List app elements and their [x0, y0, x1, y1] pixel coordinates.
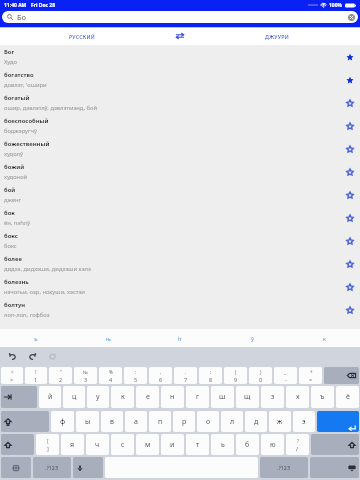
button[interactable]: Бо	[2, 11, 358, 23]
button[interactable]: ДЖУУРИ	[195, 27, 360, 45]
button[interactable]: №	[74, 367, 97, 384]
button[interactable]: globe	[1, 457, 31, 478]
button[interactable]: ф	[51, 411, 74, 432]
button[interactable]: ,	[149, 367, 172, 384]
button[interactable]: dismiss	[310, 457, 359, 478]
button[interactable]: Add to favourites	[343, 165, 357, 179]
button[interactable]: болезнь	[0, 275, 360, 298]
button[interactable]: ь	[211, 434, 234, 455]
button[interactable]: shift	[1, 434, 34, 455]
button[interactable]: Clear search	[348, 14, 355, 21]
button[interactable]: бой	[0, 183, 360, 206]
button[interactable]: backspace	[324, 367, 359, 384]
button[interactable]: и	[161, 434, 184, 455]
button[interactable]: ?	[286, 434, 309, 455]
button[interactable]: я	[61, 434, 84, 455]
button[interactable]: щ	[236, 386, 259, 408]
button[interactable]: caps	[1, 411, 49, 432]
button[interactable]: Add to favourites	[343, 73, 357, 87]
button[interactable]: более	[0, 252, 360, 275]
button[interactable]: боеспособный	[0, 114, 360, 137]
button[interactable]: а	[125, 411, 147, 432]
button[interactable]: д	[245, 411, 267, 432]
button[interactable]: һ	[144, 329, 216, 347]
button[interactable]: ъ	[311, 386, 334, 408]
button[interactable]: :	[124, 367, 147, 384]
button[interactable]: Swap languages	[165, 27, 195, 45]
button[interactable]: mic	[73, 457, 103, 478]
button[interactable]: .?123	[260, 457, 308, 478]
button[interactable]: н	[161, 386, 184, 408]
button[interactable]: ;	[199, 367, 222, 384]
button[interactable]: Add to favourites	[343, 211, 357, 225]
button[interactable]: э	[293, 411, 315, 432]
button[interactable]: у	[87, 386, 109, 408]
button[interactable]: ш	[211, 386, 234, 408]
button[interactable]: божий	[0, 160, 360, 183]
button[interactable]: богатый	[0, 91, 360, 114]
button[interactable]: м	[136, 434, 159, 455]
button[interactable]: в	[101, 411, 123, 432]
button[interactable]: shift	[311, 434, 359, 455]
button[interactable]: з	[261, 386, 284, 408]
button[interactable]: Add to favourites	[343, 303, 357, 317]
button[interactable]: )	[249, 367, 272, 384]
button[interactable]: ё	[336, 386, 359, 408]
button[interactable]: б	[236, 434, 259, 455]
button[interactable]: "	[49, 367, 72, 384]
button[interactable]: р	[173, 411, 195, 432]
button[interactable]: enter	[317, 411, 359, 432]
button[interactable]: ц	[63, 386, 85, 408]
button[interactable]: богатство	[0, 68, 360, 91]
button[interactable]: <	[1, 367, 23, 384]
button[interactable]: Add to favourites	[343, 280, 357, 294]
button[interactable]: Add to favourites	[343, 50, 357, 64]
button[interactable]: ы	[76, 411, 99, 432]
button[interactable]: бокс	[0, 229, 360, 252]
button[interactable]: Add to favourites	[343, 119, 357, 133]
button[interactable]: ъ	[0, 329, 72, 347]
button[interactable]: болтун	[0, 298, 360, 321]
button[interactable]: е	[136, 386, 159, 408]
button[interactable]: к	[111, 386, 134, 408]
button[interactable]: божественный	[0, 137, 360, 160]
button[interactable]: т	[186, 434, 209, 455]
button[interactable]: Add to favourites	[343, 96, 357, 110]
button[interactable]: п	[149, 411, 171, 432]
button[interactable]: г	[186, 386, 209, 408]
staticText: е	[146, 392, 150, 402]
button[interactable]: Undo	[5, 349, 19, 363]
button[interactable]: +	[299, 367, 322, 384]
staticText: ь	[221, 440, 225, 450]
button[interactable]: !	[25, 367, 47, 384]
button[interactable]: ў	[216, 329, 288, 347]
button[interactable]: о	[197, 411, 219, 432]
button[interactable]: Add to favourites	[343, 234, 357, 248]
button[interactable]: РУССКИЙ	[0, 27, 165, 45]
button[interactable]: ч	[86, 434, 109, 455]
button[interactable]: Бог	[0, 45, 360, 68]
button[interactable]: tab	[1, 386, 37, 408]
button[interactable]: ж	[269, 411, 291, 432]
button[interactable]: й	[39, 386, 61, 408]
button[interactable]: .	[174, 367, 197, 384]
button[interactable]: бок	[0, 206, 360, 229]
button[interactable]: %	[99, 367, 122, 384]
button[interactable]: [	[36, 434, 59, 455]
button[interactable]: Add to favourites	[343, 142, 357, 156]
button[interactable]: Redo	[25, 349, 39, 363]
button[interactable]: ю	[261, 434, 284, 455]
button[interactable]: к	[288, 329, 360, 347]
button[interactable]: х	[286, 386, 309, 408]
staticText: бок	[4, 209, 15, 217]
button[interactable]: _	[274, 367, 297, 384]
button[interactable]: л	[221, 411, 243, 432]
button[interactable]: Add to favourites	[343, 257, 357, 271]
button[interactable]: Add to favourites	[343, 188, 357, 202]
button[interactable]: Paste	[45, 349, 59, 363]
button[interactable]: (	[224, 367, 247, 384]
button[interactable]: с	[111, 434, 134, 455]
button[interactable]: .?123	[33, 457, 71, 478]
button[interactable]: њ	[72, 329, 144, 347]
